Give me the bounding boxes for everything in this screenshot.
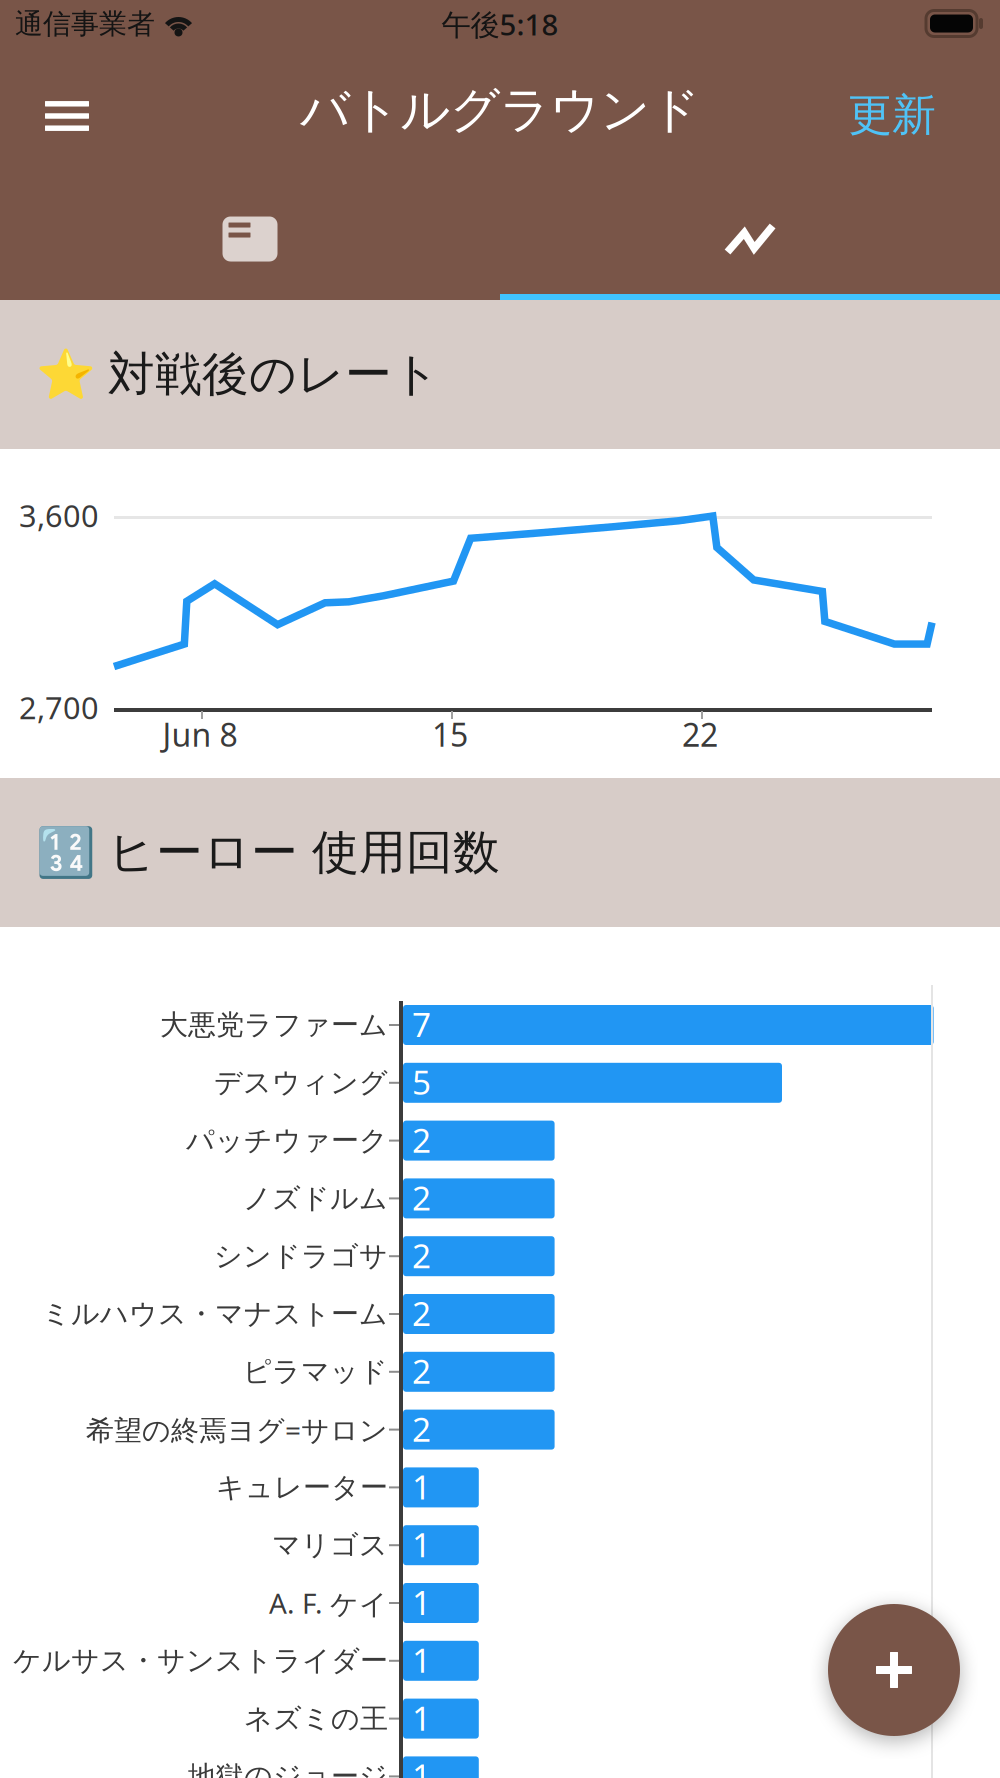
button[interactable]: Stats <box>500 160 1000 294</box>
staticText: 2 <box>412 1118 431 1162</box>
staticText: A. F. ケイ <box>269 1584 388 1622</box>
staticText: ⭐️ <box>36 347 96 402</box>
button[interactable]: Records <box>0 160 500 294</box>
staticText: バトルグラウンド <box>300 80 700 140</box>
staticText: 希望の終焉ヨグ=サロン <box>86 1411 388 1448</box>
staticText: 2 <box>412 1349 431 1393</box>
staticText: 午後5:18 <box>441 4 558 43</box>
staticText: 5 <box>412 1060 431 1104</box>
staticText: キュレーター <box>216 1470 388 1505</box>
staticText: 通信事業者 <box>15 7 155 41</box>
staticText: 15 <box>432 713 468 755</box>
staticText: ピラマッド <box>243 1355 388 1389</box>
staticText: 🔢 <box>36 825 96 880</box>
button[interactable]: Add <box>828 1604 960 1736</box>
staticText: 対戦後のレート <box>108 346 440 403</box>
staticText: 1 <box>412 1753 431 1778</box>
staticText: 1 <box>412 1638 431 1682</box>
staticText: 地獄のジョージ <box>188 1759 388 1778</box>
staticText: 1 <box>412 1522 431 1566</box>
staticText: 1 <box>412 1580 431 1624</box>
staticText: 2 <box>412 1175 431 1220</box>
staticText: 2 <box>412 1407 431 1451</box>
staticText: マリゴス <box>272 1528 388 1562</box>
button[interactable]: 更新 <box>826 48 958 160</box>
staticText: 2,700 <box>19 687 99 728</box>
staticText: デスウィング <box>214 1066 388 1100</box>
staticText: ノズドルム <box>243 1181 388 1216</box>
staticText: 2 <box>412 1233 431 1277</box>
staticText: 更新 <box>848 88 936 142</box>
staticText: ケルサス・サンストライダー <box>13 1644 388 1678</box>
staticText: 3,600 <box>19 495 99 536</box>
staticText: 1 <box>412 1464 431 1509</box>
staticText: シンドラゴサ <box>214 1239 388 1273</box>
staticText: 2 <box>412 1291 431 1335</box>
staticText: ヒーロー 使用回数 <box>108 824 500 881</box>
staticText: 7 <box>412 1002 431 1046</box>
staticText: 22 <box>682 713 718 755</box>
staticText: パッチウァーク <box>186 1123 388 1158</box>
staticText: ミルハウス・マナストーム <box>42 1297 388 1331</box>
staticText: 1 <box>412 1696 431 1740</box>
staticText: ネズミの王 <box>244 1701 388 1736</box>
button[interactable]: Menu <box>12 48 122 160</box>
staticText: Jun 8 <box>162 713 237 755</box>
staticText: 大悪党ラファーム <box>160 1008 388 1042</box>
